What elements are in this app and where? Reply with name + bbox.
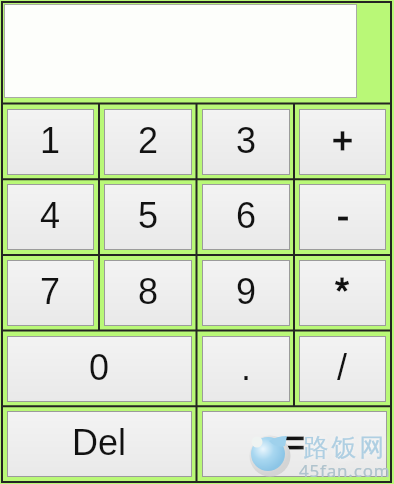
button[interactable]: 3 bbox=[202, 109, 290, 175]
button[interactable]: 1 bbox=[7, 109, 94, 175]
button[interactable]: 6 bbox=[202, 184, 290, 250]
staticText: 4 bbox=[40, 195, 61, 235]
button[interactable]: + bbox=[299, 109, 386, 175]
staticText: + bbox=[332, 120, 354, 160]
staticText: . bbox=[241, 347, 252, 387]
button[interactable]: 0 bbox=[7, 336, 192, 402]
staticText: 6 bbox=[236, 195, 257, 235]
button[interactable]: 4 bbox=[7, 184, 94, 250]
staticText: 路饭网 bbox=[302, 432, 386, 463]
staticText: * bbox=[335, 271, 350, 311]
staticText: - bbox=[337, 195, 349, 235]
button[interactable]: = bbox=[202, 411, 387, 477]
button[interactable]: / bbox=[299, 336, 386, 402]
staticText: 8 bbox=[138, 271, 159, 311]
button[interactable]: 8 bbox=[104, 260, 192, 326]
staticText: 2 bbox=[138, 120, 159, 160]
staticText: 7 bbox=[40, 271, 61, 311]
staticText: 45fan.com bbox=[299, 459, 391, 482]
button[interactable]: Del bbox=[7, 411, 192, 477]
button[interactable] bbox=[4, 4, 357, 98]
button[interactable]: 7 bbox=[7, 260, 94, 326]
staticText: 3 bbox=[236, 120, 257, 160]
button[interactable]: 2 bbox=[104, 109, 192, 175]
staticText: 1 bbox=[40, 120, 61, 160]
staticText: 5 bbox=[138, 195, 159, 235]
staticText: 0 bbox=[89, 347, 110, 387]
button[interactable]: - bbox=[299, 184, 386, 250]
staticText: / bbox=[337, 347, 348, 387]
button[interactable]: 9 bbox=[202, 260, 290, 326]
staticText: = bbox=[284, 422, 306, 462]
button[interactable]: . bbox=[202, 336, 290, 402]
button[interactable]: * bbox=[299, 260, 386, 326]
staticText: Del bbox=[72, 422, 127, 462]
button[interactable]: 5 bbox=[104, 184, 192, 250]
staticText: 9 bbox=[236, 271, 257, 311]
